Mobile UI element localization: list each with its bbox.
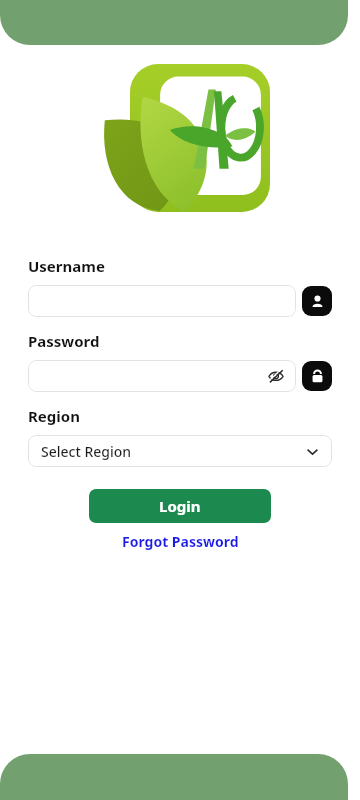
button[interactable]: Forgot Password [116, 530, 245, 553]
staticText: Region [28, 406, 80, 426]
staticText: Forgot Password [122, 532, 239, 551]
staticText: Select Region [41, 442, 132, 461]
button[interactable]: Show password [28, 360, 296, 392]
button[interactable]: Username [302, 286, 332, 316]
button[interactable]: Login [89, 489, 271, 523]
staticText: Password [28, 331, 100, 351]
button[interactable] [28, 285, 296, 317]
button[interactable]: Select Region [28, 435, 332, 467]
button[interactable]: Password [302, 361, 332, 391]
staticText: Login [159, 496, 201, 516]
staticText: Username [28, 256, 105, 276]
button[interactable]: Show password [268, 368, 284, 384]
